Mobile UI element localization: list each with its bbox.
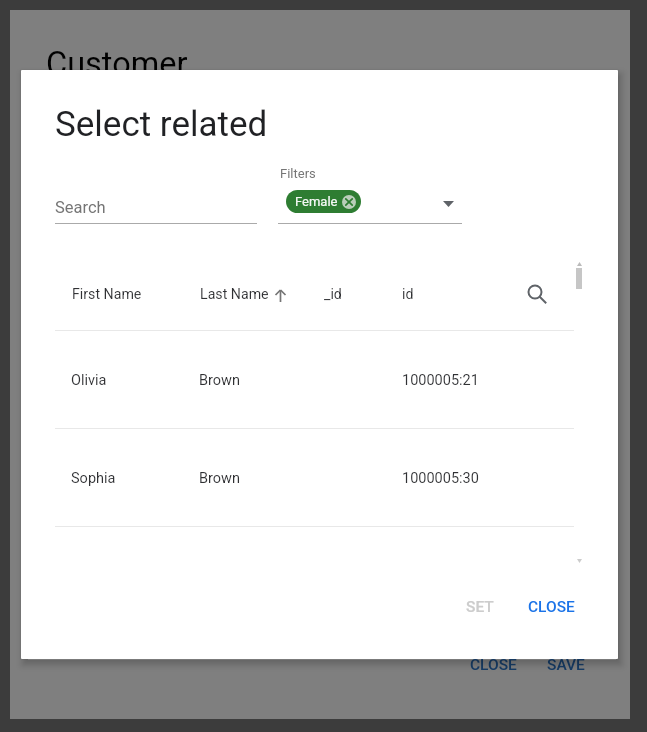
staticText: Select related	[55, 104, 268, 145]
staticText: Brown	[199, 372, 240, 389]
staticText: Last Name	[200, 286, 269, 303]
other: Scroll up	[577, 262, 582, 266]
staticText: Female	[295, 194, 338, 209]
staticText: 1000005:30	[402, 470, 479, 487]
button[interactable]: SET	[462, 598, 498, 616]
button[interactable]: Open filter list	[436, 192, 460, 216]
button[interactable]: _id	[324, 286, 342, 303]
button[interactable]: Sophia	[55, 428, 574, 526]
staticText: Sophia	[71, 470, 116, 487]
button[interactable]: Female	[286, 190, 361, 213]
staticText: 1000005:21	[402, 372, 479, 389]
staticText: Filters	[280, 166, 316, 181]
button[interactable]: Search	[55, 198, 106, 217]
button[interactable]: CLOSE	[466, 656, 521, 674]
staticText: Olivia	[71, 372, 107, 389]
other: Scroll down	[577, 559, 582, 563]
button[interactable]: First Name	[72, 286, 142, 303]
button[interactable]: id	[402, 286, 414, 303]
button[interactable]: SAVE	[543, 656, 589, 674]
staticText: Customer	[46, 45, 188, 83]
button[interactable]: Olivia	[55, 330, 574, 428]
button[interactable]: Search	[520, 277, 554, 311]
staticText: Brown	[199, 470, 240, 487]
button[interactable]: Last Name	[200, 286, 287, 303]
button[interactable]: CLOSE	[524, 598, 579, 616]
